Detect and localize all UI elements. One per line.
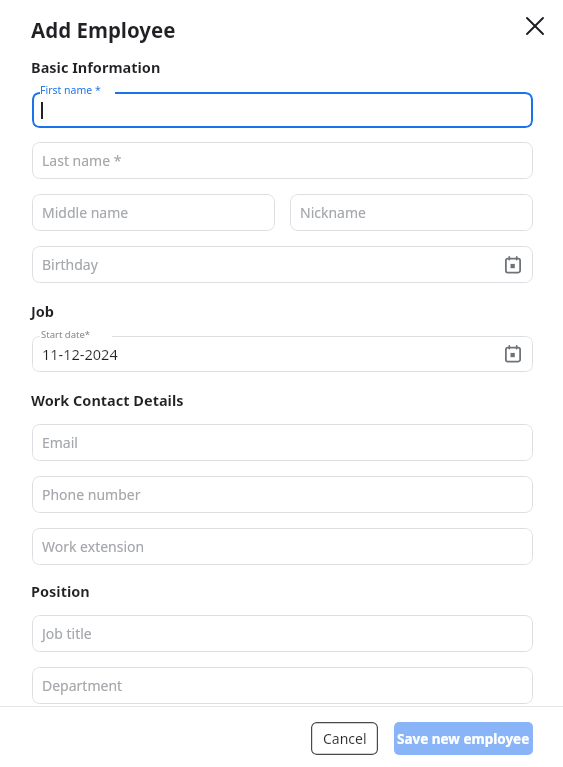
button[interactable]: Pick a date xyxy=(504,256,522,274)
staticText: Birthday xyxy=(42,255,98,274)
staticText: Work extension xyxy=(42,537,145,556)
button[interactable]: Save new employee xyxy=(394,722,533,755)
button[interactable]: Close xyxy=(519,10,551,42)
button[interactable]: Department xyxy=(32,667,533,704)
staticText: Add Employee xyxy=(31,16,176,44)
button[interactable]: 11-12-2024 xyxy=(32,336,533,372)
staticText: Basic Information xyxy=(31,57,161,77)
staticText: First name * xyxy=(40,83,101,97)
staticText: Last name * xyxy=(42,151,122,170)
staticText: Job title xyxy=(42,624,92,643)
staticText: Middle name xyxy=(42,203,129,222)
button[interactable]: Cancel xyxy=(311,722,378,755)
button[interactable]: Last name * xyxy=(32,142,533,179)
button[interactable] xyxy=(32,92,533,128)
staticText: Position xyxy=(31,581,90,601)
staticText: Save new employee xyxy=(397,730,530,748)
staticText: 11-12-2024 xyxy=(42,344,118,364)
staticText: Department xyxy=(42,676,123,695)
staticText: Job xyxy=(31,301,55,321)
staticText: Nickname xyxy=(300,203,366,222)
button[interactable]: Middle name xyxy=(32,194,275,231)
button[interactable]: Birthday xyxy=(32,246,533,283)
button[interactable]: Pick start date xyxy=(504,345,522,363)
staticText: Phone number xyxy=(42,485,141,504)
staticText: Cancel xyxy=(323,729,367,748)
button[interactable]: Job title xyxy=(32,615,533,652)
button[interactable]: Phone number xyxy=(32,476,533,513)
staticText: Email xyxy=(42,433,78,452)
button[interactable]: Nickname xyxy=(290,194,533,231)
staticText: Work Contact Details xyxy=(31,390,184,410)
button[interactable]: Work extension xyxy=(32,528,533,565)
button[interactable]: Email xyxy=(32,424,533,461)
staticText: Start date* xyxy=(41,328,90,341)
